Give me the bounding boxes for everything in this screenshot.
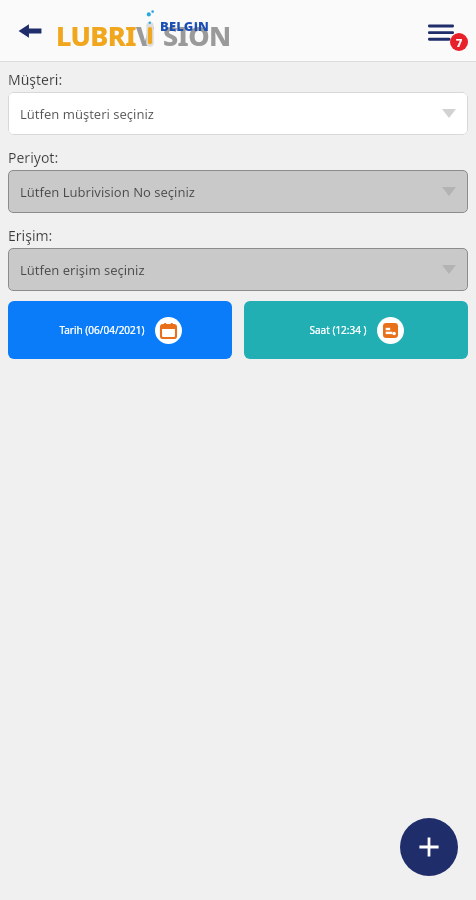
staticText: Müşteri: [8, 70, 63, 89]
staticText: V [136, 17, 154, 54]
staticText: LUBRI [56, 17, 136, 54]
staticText: Lütfen Lubrivision No seçiniz [20, 183, 195, 201]
button[interactable]: Saat seç [244, 301, 468, 359]
staticText: Periyot: [8, 148, 59, 167]
staticText: Tarih (06/04/2021) [59, 323, 145, 337]
staticText: SION [163, 17, 231, 54]
staticText: Lütfen erişim seçiniz [20, 261, 145, 279]
staticText: 7 [456, 35, 463, 50]
button[interactable]: Lütfen erişim seçiniz [8, 248, 468, 291]
button[interactable]: Ekle [400, 818, 458, 876]
button[interactable]: Lütfen müşteri seçiniz [8, 92, 468, 135]
button[interactable]: Menü [418, 8, 464, 54]
button[interactable]: Geri [8, 9, 52, 53]
staticText: Saat (12:34 ) [309, 323, 367, 337]
button[interactable]: Tarih seç [8, 301, 232, 359]
staticText: Erişim: [8, 226, 53, 245]
staticText: BELGiN [160, 17, 210, 35]
staticText: Lütfen müşteri seçiniz [20, 105, 154, 123]
button[interactable]: Lütfen Lubrivision No seçiniz [8, 170, 468, 213]
